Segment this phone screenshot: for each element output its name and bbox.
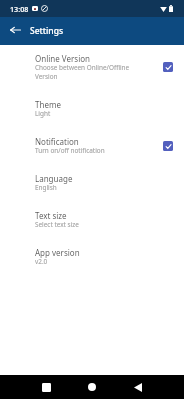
staticText: Notification (35, 136, 79, 147)
staticText: Online Version (35, 53, 90, 64)
button[interactable]: Back (5, 17, 26, 45)
button[interactable]: Home (69, 375, 115, 399)
staticText: Light (35, 109, 51, 118)
staticText: v2.0 (35, 257, 48, 266)
button[interactable]: Language (0, 164, 184, 201)
staticText: Theme (35, 99, 61, 110)
staticText: Turn on/off notification (35, 146, 105, 155)
button[interactable]: Notification (0, 127, 184, 164)
staticText: App version (35, 247, 80, 258)
staticText: Language (35, 173, 73, 184)
button[interactable]: Back (115, 375, 161, 399)
staticText: Select text size (35, 220, 79, 229)
staticText: Choose between Online/Offline Version (35, 63, 147, 81)
button[interactable]: Text size (0, 201, 184, 238)
button[interactable]: Online Version (0, 45, 184, 90)
staticText: 13:08 (10, 4, 29, 14)
staticText: Settings (30, 25, 64, 37)
button[interactable]: Online Version (163, 62, 173, 72)
staticText: Text size (35, 210, 67, 221)
button[interactable]: Recents (23, 375, 69, 399)
button[interactable]: Theme (0, 90, 184, 127)
staticText: English (35, 183, 57, 192)
button[interactable]: Notification (163, 141, 173, 151)
button[interactable]: App version (0, 238, 184, 275)
